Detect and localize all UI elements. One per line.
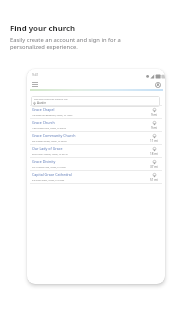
staticText: Grace Community Church	[32, 133, 76, 138]
staticText: 385 Sullivan Street, Austin, TX 50185	[32, 140, 67, 143]
staticText: 138 Dawn Hill Boulevard, Austin, TX 1234…	[32, 114, 73, 117]
staticText: Find your church by name or city	[34, 98, 68, 101]
staticText: Grace Chapel	[32, 107, 55, 112]
staticText: Capital Grace Cathedral	[32, 172, 72, 177]
staticText: 37 mi	[150, 165, 158, 169]
button[interactable]: Find your church by name or city	[31, 96, 160, 107]
button[interactable]: Grace Church	[30, 119, 162, 131]
staticText: 11 mi	[150, 139, 158, 143]
staticText: 9649 North Avenue, Austin, TX 50145	[32, 153, 68, 156]
staticText: 1480 Wright Lane, Austin, TX 55643	[32, 127, 66, 130]
button[interactable]: Grace Divinity	[30, 158, 162, 170]
button[interactable]: Grace Community Church	[30, 132, 162, 144]
staticText: 9 mi	[151, 113, 158, 117]
button[interactable]: Capital Grace Cathedral	[30, 171, 162, 183]
button[interactable]: Our Lady of Grace	[30, 145, 162, 157]
staticText: Grace Divinity	[32, 159, 56, 164]
staticText: 4213 Nelson Lane, Austin, TX 22361	[32, 166, 67, 169]
staticText: Easily create an account and sign in for…	[10, 36, 121, 51]
staticText: 9 mi	[151, 126, 158, 130]
staticText: 649 Palm Street, Austin, TX 67389	[32, 179, 65, 182]
staticText: Our Lady of Grace	[32, 146, 63, 151]
staticText: Find your church	[10, 23, 76, 34]
button[interactable]: Open navigation menu	[29, 79, 40, 90]
staticText: Grace Church	[32, 120, 55, 125]
button[interactable]: Grace Chapel	[30, 106, 162, 118]
staticText: 18 mi	[150, 152, 158, 156]
staticText: 51 mi	[150, 178, 158, 182]
staticText: Austin	[37, 101, 47, 105]
staticText: 9:41	[32, 73, 39, 77]
button[interactable]: Account	[152, 79, 163, 90]
